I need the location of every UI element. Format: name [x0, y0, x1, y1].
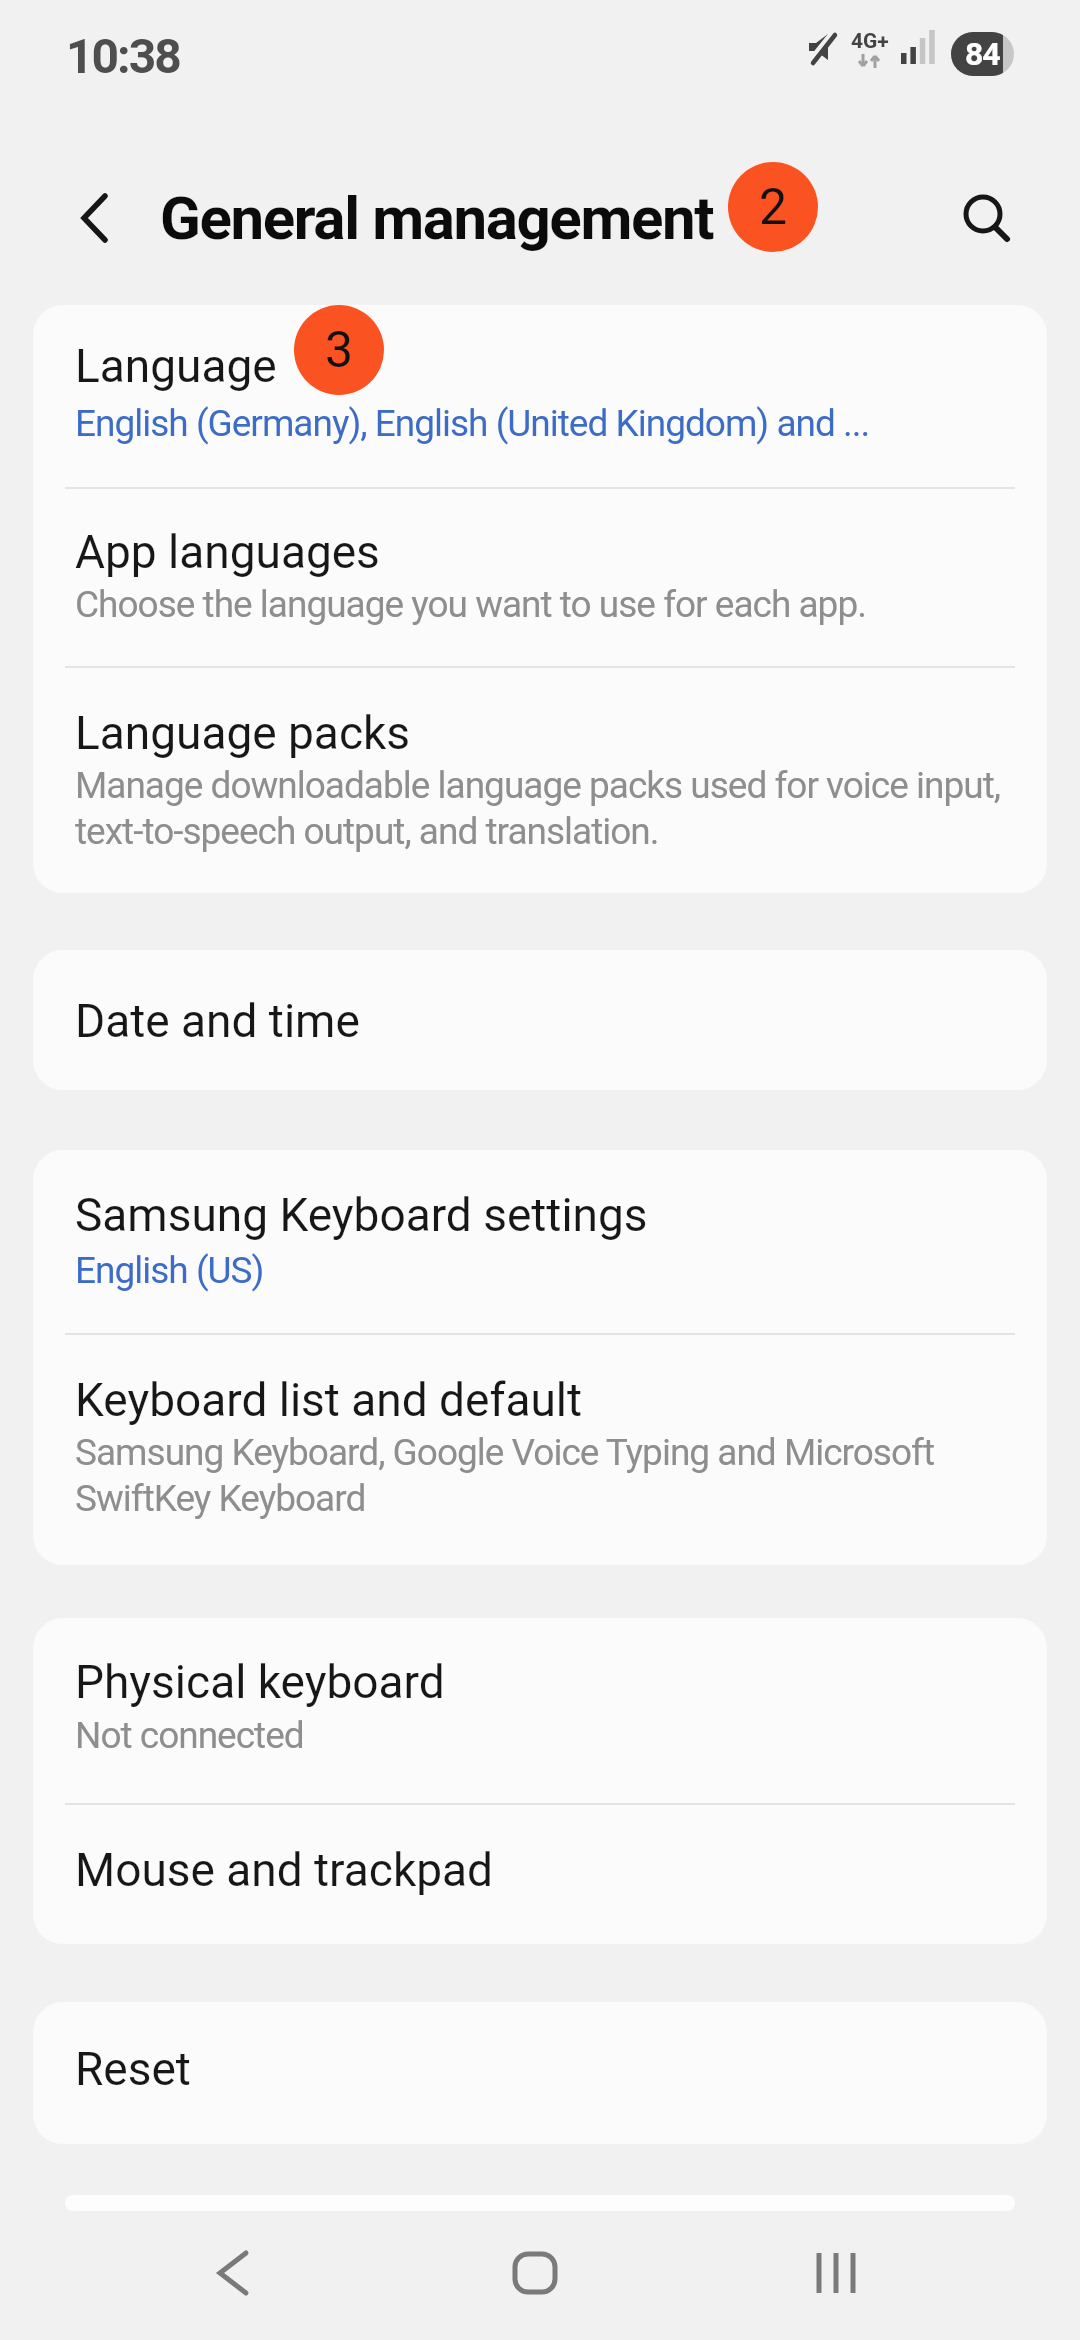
button[interactable]	[60, 183, 130, 253]
button[interactable]: Language	[33, 305, 1047, 487]
staticText: App languages	[75, 525, 380, 579]
button[interactable]: Samsung Keyboard settings	[33, 1150, 1047, 1333]
button[interactable]: Date and time	[33, 950, 1047, 1090]
staticText: Date and time	[75, 994, 360, 1048]
staticText: 3	[325, 321, 354, 380]
staticText: Language packs	[75, 706, 411, 760]
staticText: Samsung Keyboard, Google Voice Typing an…	[75, 1431, 1005, 1520]
staticText: Language	[75, 339, 277, 393]
staticText: Samsung Keyboard settings	[75, 1188, 648, 1242]
button[interactable]	[485, 2250, 585, 2296]
staticText: General management	[160, 183, 714, 253]
staticText: 4G+	[851, 29, 889, 54]
button[interactable]: Keyboard list and default	[33, 1335, 1047, 1565]
button[interactable]	[948, 180, 1024, 256]
staticText: 10:38	[66, 28, 180, 76]
staticText: Manage downloadable language packs used …	[75, 764, 1005, 853]
button[interactable]	[183, 2250, 283, 2296]
staticText: English (US)	[75, 1249, 264, 1292]
staticText: 2	[759, 178, 788, 237]
button[interactable]	[786, 2250, 886, 2296]
staticText: Keyboard list and default	[75, 1373, 583, 1427]
staticText: Mouse and trackpad	[75, 1843, 494, 1897]
staticText: 84	[965, 35, 1000, 73]
button[interactable]: Physical keyboard	[33, 1618, 1047, 1803]
staticText: Choose the language you want to use for …	[75, 583, 866, 626]
button[interactable]: Mouse and trackpad	[33, 1805, 1047, 1944]
button[interactable]: Language packs	[33, 668, 1047, 893]
button[interactable]: App languages	[33, 489, 1047, 666]
staticText: Physical keyboard	[75, 1655, 445, 1709]
staticText: Not connected	[75, 1714, 304, 1757]
button[interactable]: Reset	[33, 2002, 1047, 2144]
staticText: English (Germany), English (United Kingd…	[75, 402, 870, 445]
staticText: Reset	[75, 2042, 191, 2096]
